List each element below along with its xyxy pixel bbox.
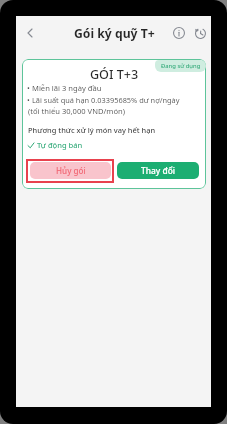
button[interactable]: Information: [171, 25, 187, 41]
staticText: Lãi suất quá hạn 0.03395685% dư nợ/ngày: [32, 95, 180, 105]
button[interactable]: Hủy gói: [30, 162, 111, 179]
staticText: Hủy gói: [56, 165, 86, 176]
staticText: Miễn lãi 3 ngày đầu: [32, 83, 102, 93]
staticText: GÓI T+3: [22, 66, 206, 83]
staticText: (tối thiểu 30,000 VND/món): [28, 106, 125, 116]
button[interactable]: History: [192, 25, 208, 41]
staticText: Tự động bán: [37, 140, 83, 150]
staticText: Phương thức xử lý món vay hết hạn: [28, 125, 156, 135]
button[interactable]: Back: [19, 22, 41, 44]
staticText: •: [27, 95, 30, 105]
staticText: Thay đổi: [141, 165, 176, 176]
button[interactable]: Thay đổi: [117, 162, 199, 179]
staticText: •: [27, 83, 30, 93]
staticText: Đang sử dụng: [161, 62, 201, 70]
staticText: Gói ký quỹ T+: [74, 25, 155, 42]
